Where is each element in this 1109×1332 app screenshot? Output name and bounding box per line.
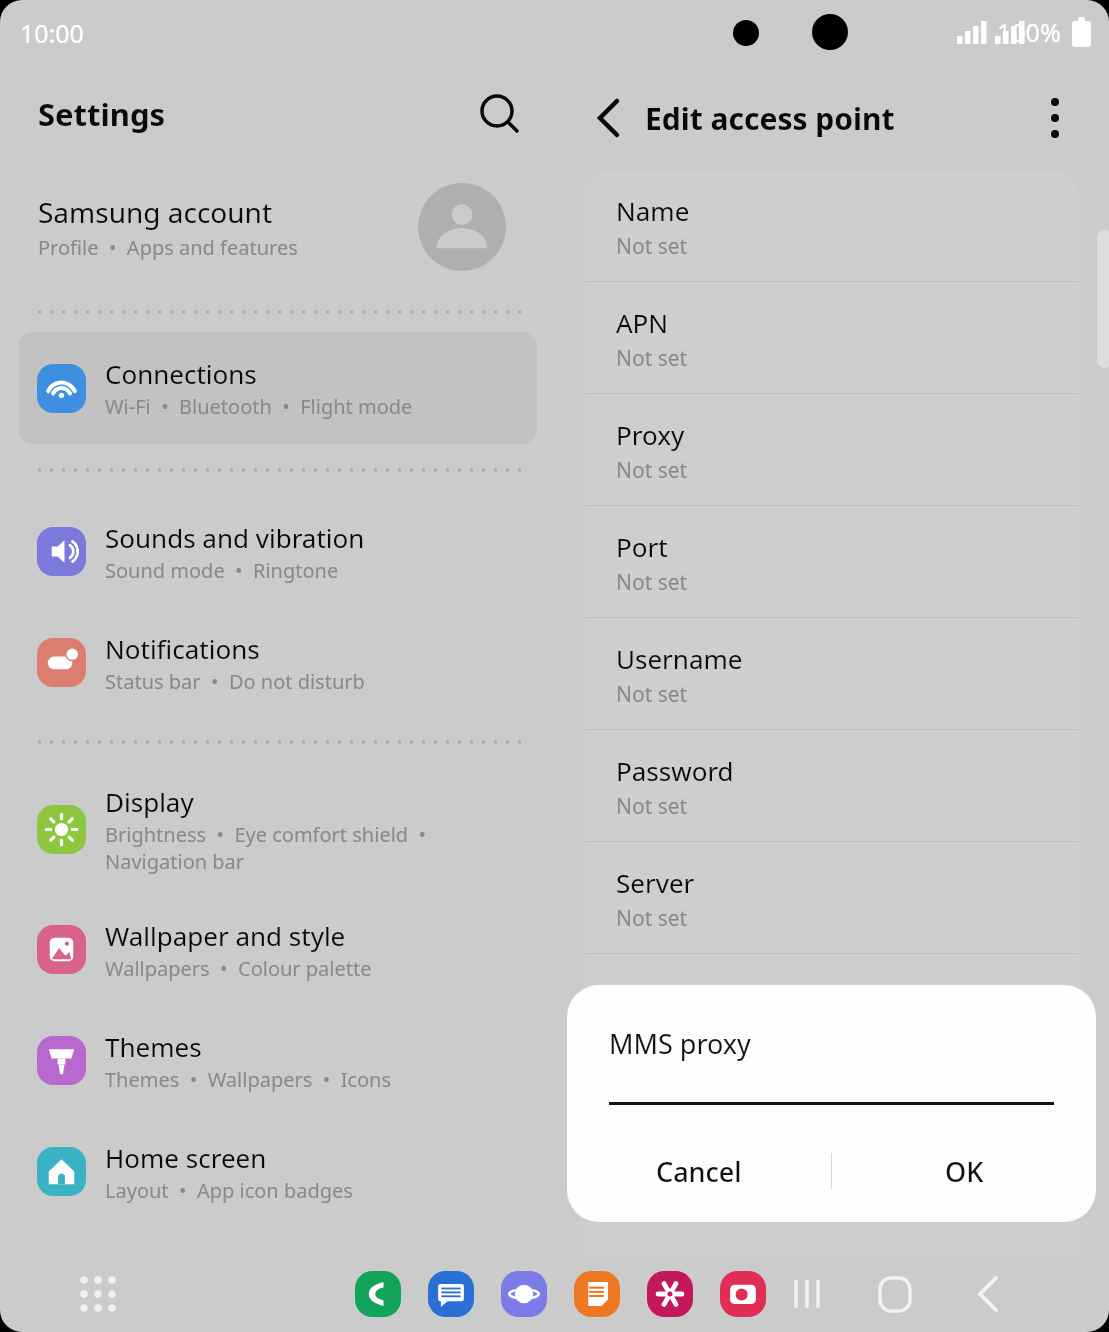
staticText: Connections [105,356,257,391]
staticText: Password [616,753,734,788]
staticText: OK [945,1153,984,1190]
staticText: 100% [997,15,1061,49]
staticText: Sounds and vibration [105,520,365,555]
button[interactable]: Username [583,618,1080,729]
staticText: Sound mode • Ringtone [105,557,339,584]
staticText: Themes [105,1029,202,1064]
staticText: Wallpapers • Colour palette [105,955,372,982]
button[interactable]: Cancel [567,1138,831,1204]
button[interactable]: Apps [70,1266,126,1322]
button[interactable]: App [355,1271,401,1317]
staticText: MMSC [616,977,694,1012]
button[interactable]: Name [583,170,1080,281]
staticText: Layout • App icon badges [105,1177,353,1204]
staticText: Server [616,865,695,900]
button[interactable]: App [647,1271,693,1317]
staticText: 10:00 [20,16,84,50]
staticText: Brightness • Eye comfort shield • Naviga… [105,821,427,875]
staticText: Proxy [616,417,685,452]
staticText: Settings [38,93,166,135]
staticText: Notifications [105,631,260,666]
button[interactable]: Back [578,90,634,146]
button[interactable]: OK [832,1138,1096,1204]
button[interactable]: More options [1027,90,1083,146]
button[interactable]: Recents [779,1266,835,1322]
button[interactable]: App [574,1271,620,1317]
button[interactable]: Sounds and vibration [0,496,560,607]
button[interactable]: Notifications [0,607,560,718]
staticText: MMS proxy [609,1025,751,1062]
staticText: Not set [616,344,688,373]
staticText: Cancel [656,1153,742,1190]
staticText: Home screen [105,1140,267,1175]
staticText: Not set [616,680,688,709]
staticText: Profile • Apps and features [38,234,298,261]
staticText: Samsung account [38,193,273,231]
button[interactable]: App [720,1271,766,1317]
staticText: Not set [616,456,688,485]
staticText: Display [105,784,194,819]
staticText: Not set [616,904,688,933]
staticText: Wi-Fi • Bluetooth • Flight mode [105,393,413,420]
button[interactable]: Password [583,730,1080,841]
staticText: Not set [616,232,688,261]
button[interactable]: App [428,1271,474,1317]
staticText: Not set [616,792,688,821]
button[interactable]: Samsung account [0,162,560,292]
button[interactable]: Search [470,86,526,142]
staticText: Port [616,529,668,564]
staticText: Status bar • Do not disturb [105,668,365,695]
button[interactable]: Port [583,506,1080,617]
staticText: Edit access point [645,98,895,139]
button[interactable]: Themes [0,1005,560,1116]
staticText: Username [616,641,743,676]
button[interactable]: Back [957,1266,1013,1322]
button[interactable]: App [501,1271,547,1317]
button[interactable]: Connections [19,332,537,444]
button[interactable]: APN [583,282,1080,393]
staticText: Name [616,193,690,228]
staticText: Wallpaper and style [105,918,346,953]
staticText: APN [616,305,669,340]
button[interactable]: Display [0,764,560,894]
button[interactable]: Home screen [0,1116,560,1227]
button[interactable]: Wallpaper and style [0,894,560,1005]
staticText: Not set [616,568,688,597]
staticText: Not set [616,1016,688,1045]
button[interactable]: Home [867,1266,923,1322]
button[interactable]: Proxy [583,394,1080,505]
button[interactable]: MMSC [583,954,1080,1065]
staticText: Themes • Wallpapers • Icons [105,1066,392,1093]
button[interactable]: Server [583,842,1080,953]
